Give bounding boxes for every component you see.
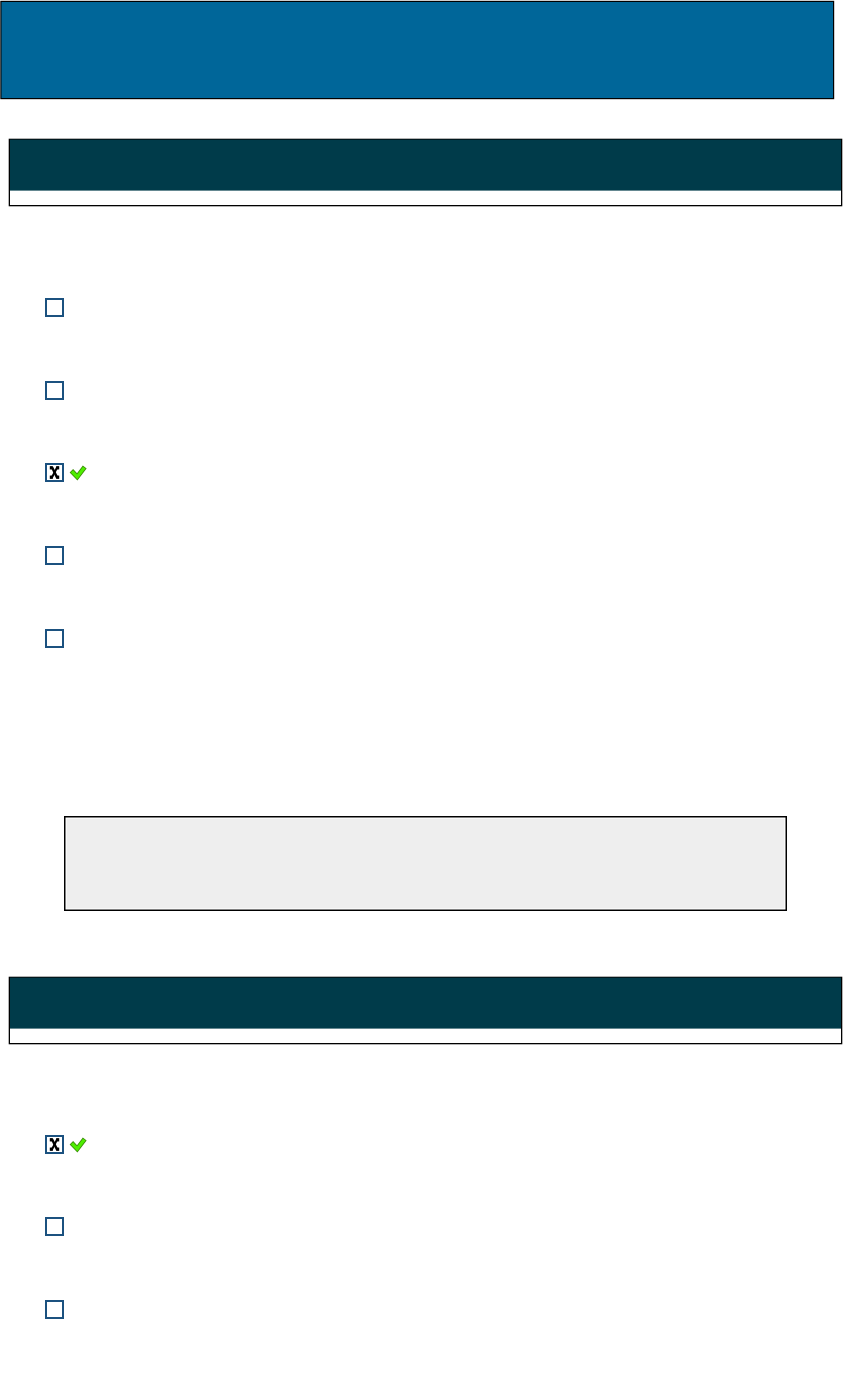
button[interactable]: Comment box (64, 816, 787, 911)
button[interactable]: Section one heading (8, 138, 843, 207)
button[interactable]: Document title banner (0, 0, 835, 100)
button[interactable]: Option 8 (45, 1300, 785, 1319)
button[interactable]: Option 5 (45, 629, 785, 648)
button[interactable]: Option 6, selected (45, 1135, 785, 1154)
button[interactable]: Option 4 (45, 546, 785, 565)
button[interactable]: Option 1 (45, 298, 785, 317)
button[interactable]: Option 3, selected (45, 463, 785, 482)
button[interactable]: Section two heading (8, 976, 843, 1045)
button[interactable]: Option 7 (45, 1217, 785, 1236)
button[interactable]: Option 2 (45, 381, 785, 400)
